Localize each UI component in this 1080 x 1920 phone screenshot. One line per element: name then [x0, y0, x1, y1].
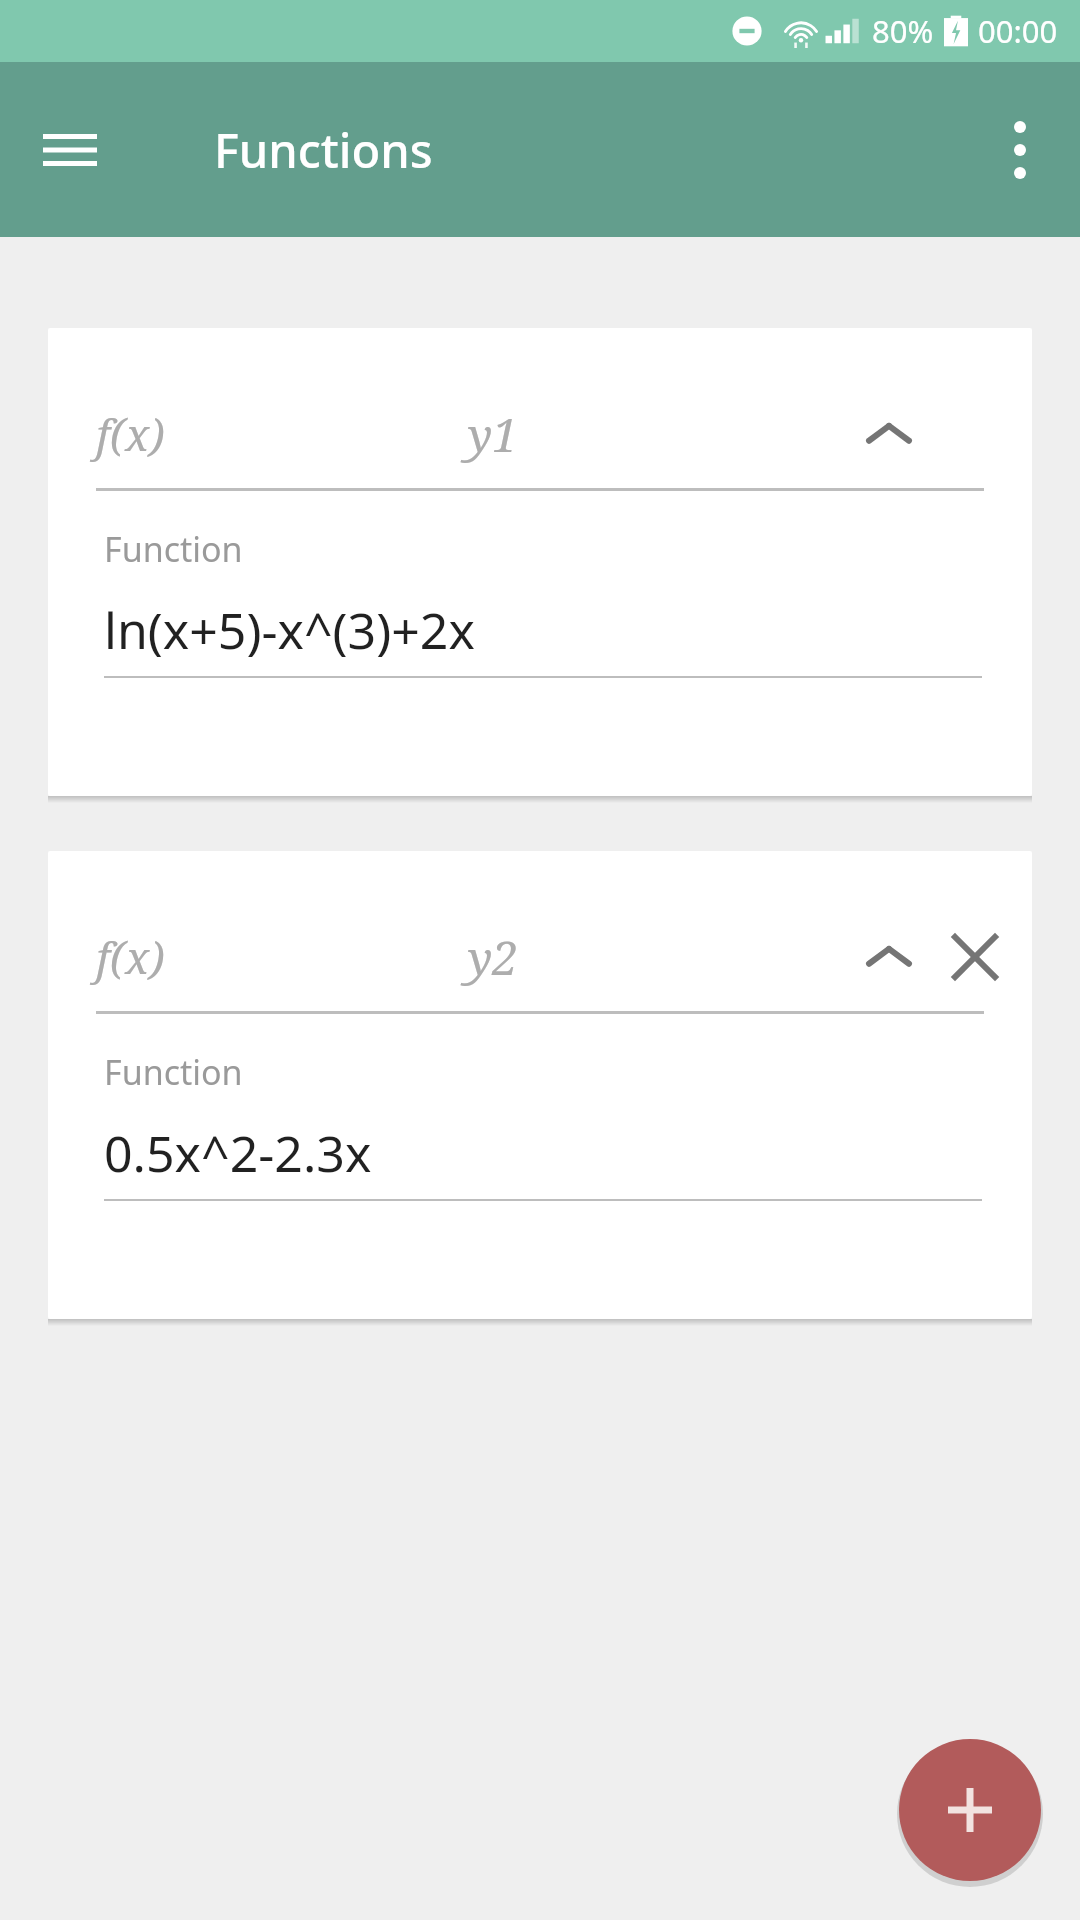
- staticText: y2: [468, 926, 519, 989]
- staticText: 80%: [872, 10, 934, 52]
- staticText: 00:00: [978, 10, 1058, 52]
- staticText: ln(x+5)-x^(3)+2x: [104, 596, 475, 664]
- button[interactable]: Open navigation menu: [34, 114, 106, 186]
- button[interactable]: f(x): [48, 328, 1032, 796]
- staticText: Functions: [214, 118, 433, 182]
- button[interactable]: Collapse: [846, 914, 932, 1000]
- staticText: f(x): [96, 927, 165, 987]
- button[interactable]: Remove function: [932, 914, 1018, 1000]
- staticText: Function: [104, 1049, 243, 1095]
- staticText: y1: [468, 403, 519, 466]
- button[interactable]: More options: [982, 112, 1058, 188]
- button[interactable]: Add function: [899, 1739, 1041, 1881]
- staticText: f(x): [96, 404, 165, 464]
- button[interactable]: Collapse: [846, 391, 932, 477]
- staticText: 0.5x^2-2.3x: [104, 1119, 372, 1187]
- staticText: Function: [104, 526, 243, 572]
- button[interactable]: f(x): [48, 851, 1032, 1319]
